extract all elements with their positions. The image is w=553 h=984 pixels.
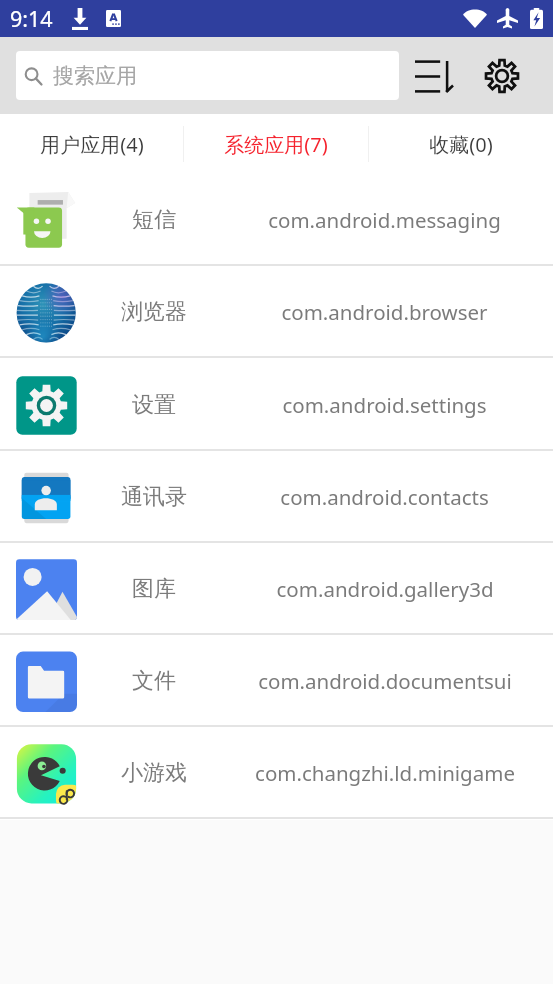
staticText: com.android.gallery3d (276, 575, 494, 603)
staticText: 用户应用(4) (40, 131, 144, 158)
staticText: 浏览器 (121, 298, 187, 326)
button[interactable]: 收藏(0) (369, 114, 553, 174)
button[interactable]: 系统应用(7) (184, 114, 368, 174)
button[interactable]: 文件 (0, 635, 553, 727)
staticText: com.android.messaging (268, 206, 501, 234)
button[interactable]: 图库 (0, 543, 553, 635)
staticText: 图库 (132, 575, 176, 603)
button[interactable]: Settings (475, 45, 529, 107)
button[interactable]: Sort (407, 45, 461, 107)
staticText: 小游戏 (121, 759, 187, 787)
button[interactable]: 用户应用(4) (0, 114, 183, 174)
staticText: 9:14 (10, 4, 53, 33)
staticText: com.android.documentsui (258, 667, 512, 695)
staticText: 短信 (132, 206, 176, 234)
button[interactable]: 短信 (0, 174, 553, 266)
staticText: 系统应用(7) (224, 131, 328, 158)
button[interactable]: 设置 (0, 359, 553, 451)
button[interactable]: 浏览器 (0, 266, 553, 358)
button[interactable]: 搜索应用 (16, 51, 399, 100)
staticText: 搜索应用 (53, 63, 137, 89)
staticText: 收藏(0) (429, 131, 493, 158)
staticText: com.android.settings (282, 391, 487, 419)
staticText: com.changzhi.ld.minigame (255, 759, 515, 787)
staticText: 文件 (132, 667, 176, 695)
staticText: 通讯录 (121, 483, 187, 511)
button[interactable]: 小游戏 (0, 727, 553, 819)
button[interactable]: 通讯录 (0, 451, 553, 543)
staticText: 设置 (132, 391, 176, 419)
staticText: com.android.contacts (280, 483, 489, 511)
staticText: com.android.browser (281, 298, 488, 326)
